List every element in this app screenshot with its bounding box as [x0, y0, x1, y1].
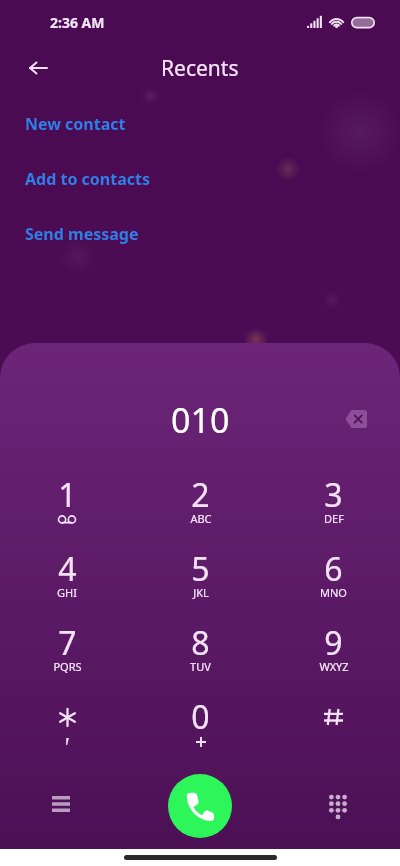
button[interactable]: 0 [134, 688, 267, 762]
button[interactable]: 4 [0, 540, 134, 614]
button[interactable]: New contact [0, 96, 400, 151]
staticText: 5 [191, 547, 210, 591]
button[interactable] [267, 688, 400, 762]
button[interactable]: Send message [0, 206, 400, 261]
staticText: PQRS [53, 659, 82, 674]
button[interactable]: 5 [134, 540, 267, 614]
staticText: ABC [190, 511, 212, 526]
staticText: GHI [57, 585, 77, 600]
staticText: 2 [191, 473, 210, 517]
staticText: MNO [320, 585, 347, 600]
staticText: New contact [25, 113, 126, 135]
staticText: 2:36 AM [50, 13, 105, 32]
staticText: DEF [324, 511, 344, 526]
button[interactable]: Backspace [336, 399, 376, 439]
staticText: Send message [25, 223, 139, 245]
button[interactable]: 2 [134, 466, 267, 540]
staticText: Add to contacts [25, 168, 150, 190]
button[interactable] [0, 688, 134, 762]
staticText: WXYZ [319, 659, 349, 674]
staticText: 0 [191, 695, 210, 739]
button[interactable]: Add to contacts [0, 151, 400, 206]
button[interactable]: Back [18, 48, 58, 88]
staticText: 3 [324, 473, 343, 517]
button[interactable]: 1 [0, 466, 134, 540]
staticText: JKL [193, 585, 209, 600]
staticText: 4 [58, 547, 77, 591]
staticText: 9 [324, 621, 343, 665]
staticText: 8 [191, 621, 210, 665]
staticText: TUV [190, 659, 211, 674]
button[interactable]: Dialpad [316, 785, 360, 829]
staticText: 7 [58, 621, 77, 665]
button[interactable]: 6 [267, 540, 400, 614]
staticText: 6 [324, 547, 343, 591]
button[interactable]: 9 [267, 614, 400, 688]
staticText: 010 [171, 397, 230, 443]
button[interactable]: 3 [267, 466, 400, 540]
button[interactable]: 7 [0, 614, 134, 688]
button[interactable]: 8 [134, 614, 267, 688]
button[interactable]: Menu [39, 782, 83, 826]
staticText: 1 [58, 473, 77, 517]
staticText: Recents [161, 54, 239, 83]
button[interactable]: Call [168, 774, 232, 838]
